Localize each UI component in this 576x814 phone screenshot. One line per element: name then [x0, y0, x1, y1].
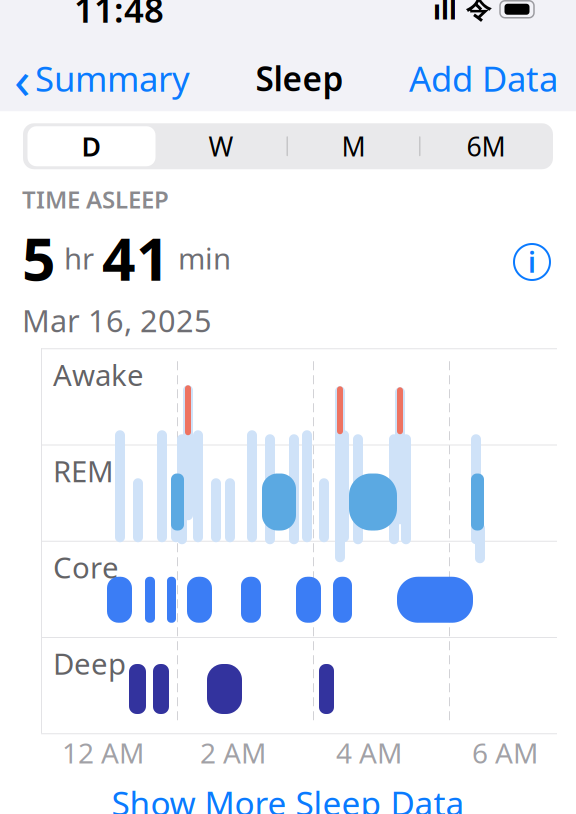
staticText: ıll — [433, 0, 457, 27]
button[interactable]: About sleep stages — [514, 244, 550, 280]
staticText: W — [208, 128, 233, 164]
staticText: i — [528, 243, 536, 281]
staticText: 2 AM — [200, 734, 266, 771]
staticText: 5 — [22, 219, 56, 297]
staticText: min — [170, 239, 231, 278]
button[interactable]: Add Data — [409, 49, 576, 107]
button[interactable]: ‹ — [0, 37, 190, 120]
button[interactable]: Show More Sleep Data — [0, 776, 576, 814]
button[interactable]: D — [27, 126, 155, 166]
staticText: Add Data — [409, 55, 558, 101]
staticText: 41 — [102, 219, 170, 297]
staticText: 6 AM — [472, 734, 538, 771]
staticText: D — [81, 128, 101, 164]
staticText: ‹ — [14, 43, 31, 114]
staticText: 12 AM — [62, 734, 144, 771]
button[interactable]: W — [155, 126, 286, 166]
staticText: REM — [53, 451, 114, 490]
button[interactable]: M — [288, 126, 419, 166]
staticText: Core — [53, 548, 119, 587]
staticText: Mar 16, 2025 — [22, 300, 212, 341]
staticText: M — [341, 128, 365, 164]
staticText: TIME ASLEEP — [22, 183, 169, 215]
staticText: 11:48 — [74, 0, 164, 32]
staticText: 6M — [466, 128, 505, 164]
staticText: Awake — [53, 355, 144, 394]
staticText: 4 AM — [336, 734, 402, 771]
button[interactable]: 6M — [420, 126, 551, 166]
staticText: Show More Sleep Data — [111, 781, 464, 814]
staticText: Deep — [53, 644, 126, 683]
staticText: Summary — [35, 55, 190, 101]
staticText: Sleep — [255, 56, 343, 100]
staticText: hr — [56, 239, 102, 278]
staticText: 令 — [466, 0, 491, 25]
